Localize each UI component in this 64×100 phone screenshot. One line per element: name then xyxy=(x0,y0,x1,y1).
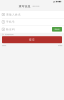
staticText: 提交 xyxy=(29,38,35,41)
staticText: 我已阅读并同意条款 xyxy=(4,34,13,35)
button[interactable]: 获取验证码 xyxy=(52,27,62,32)
staticText: 验证码 xyxy=(6,28,15,31)
button[interactable]: 提交 xyxy=(2,36,62,43)
button[interactable]: 我已阅读并同意条款 xyxy=(2,34,13,35)
staticText: 请核对订单信息 xyxy=(32,5,39,7)
staticText: 请输入姓名 xyxy=(6,13,21,16)
staticText: 手机号 xyxy=(6,20,15,24)
staticText: 填写信息 xyxy=(19,5,31,8)
staticText: 获取验证码 xyxy=(54,28,59,30)
